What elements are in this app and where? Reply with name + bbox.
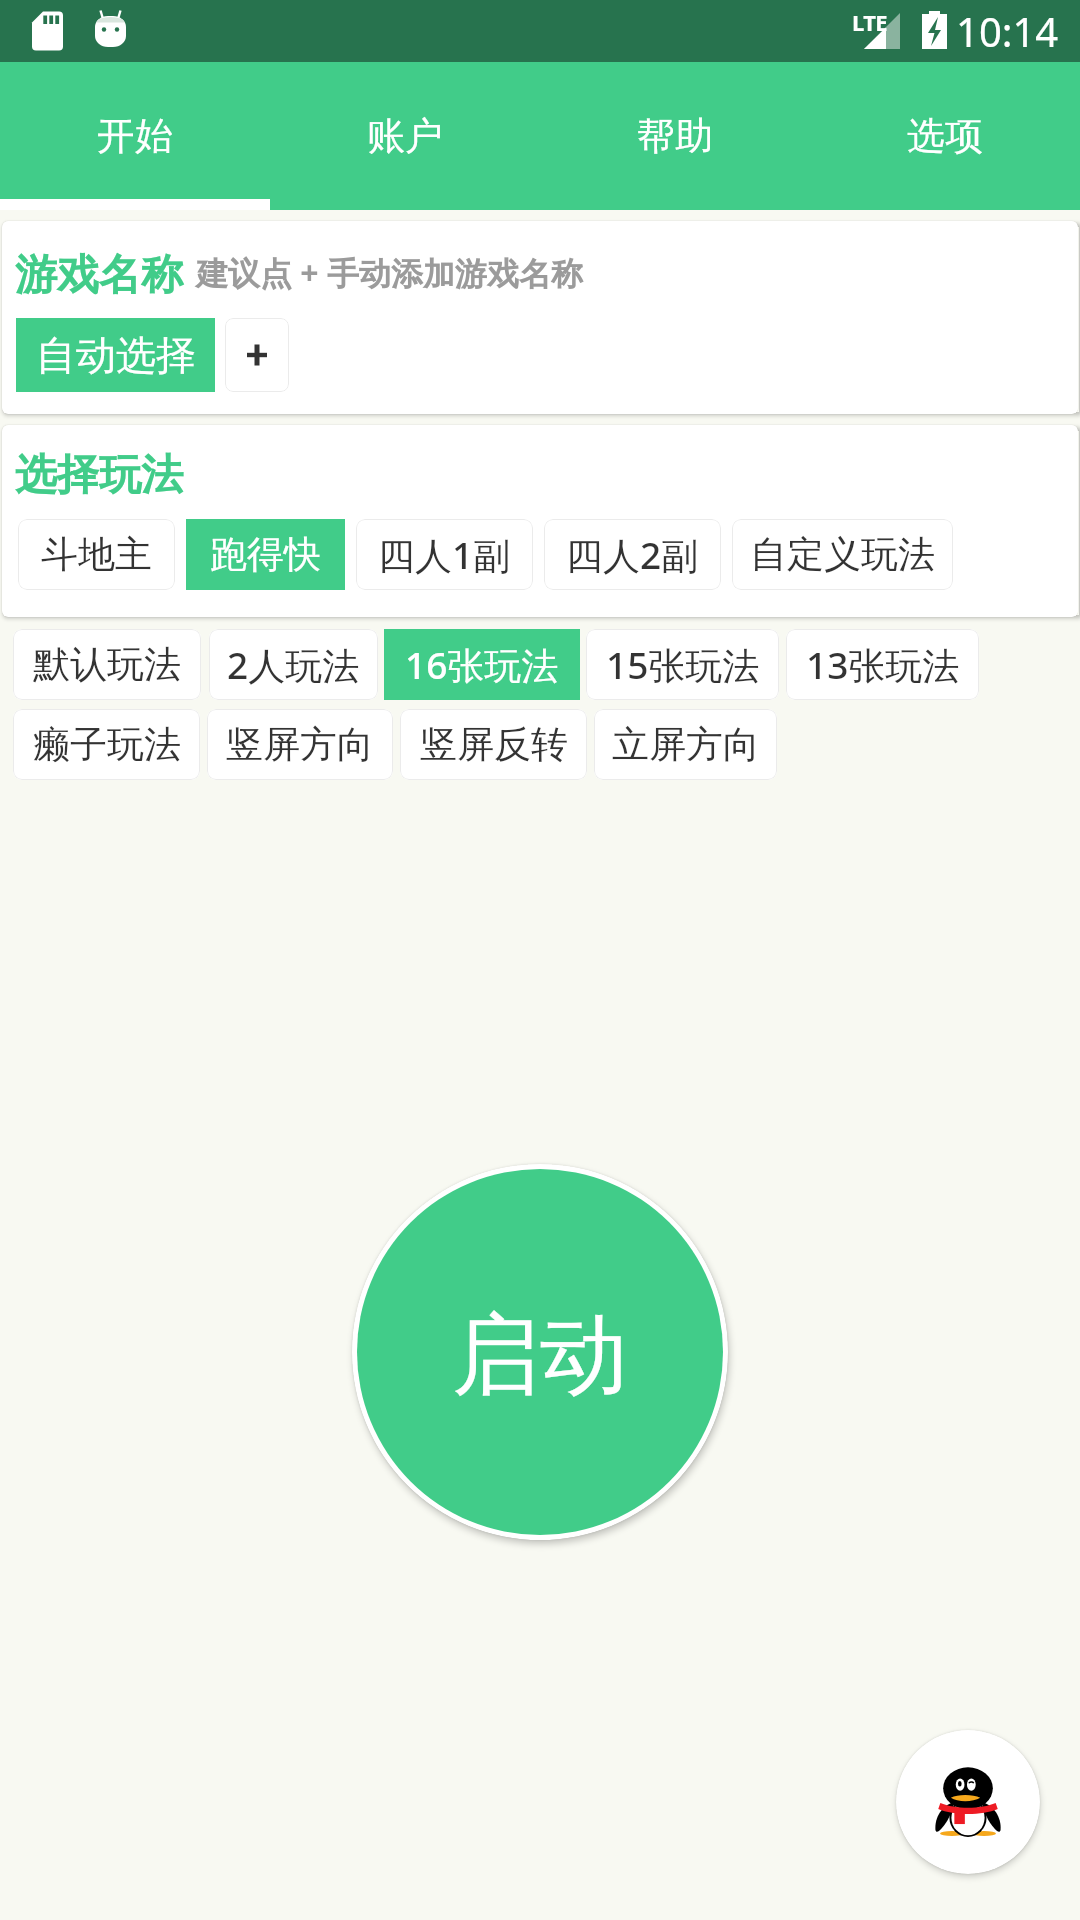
button[interactable]: 选项 xyxy=(810,62,1080,210)
button[interactable]: 自定义玩法 xyxy=(732,519,953,590)
staticText: 竖屏方向 xyxy=(226,721,374,768)
staticText: 四人2副 xyxy=(566,529,699,580)
button[interactable]: 竖屏方向 xyxy=(207,709,393,780)
staticText: 15张玩法 xyxy=(606,639,760,690)
staticText: 选择玩法 xyxy=(15,449,183,502)
button[interactable]: Add xyxy=(225,318,289,392)
staticText: 自动选择 xyxy=(36,330,196,380)
button[interactable]: 默认玩法 xyxy=(13,629,201,700)
button[interactable]: 斗地主 xyxy=(18,519,175,590)
button[interactable]: 2人玩法 xyxy=(209,629,378,700)
staticText: 自定义玩法 xyxy=(750,531,935,578)
staticText: LTE xyxy=(852,7,888,37)
staticText: 帮助 xyxy=(637,112,713,160)
staticText: 账户 xyxy=(367,112,443,160)
staticText: 竖屏反转 xyxy=(420,721,568,768)
button[interactable]: 开始 xyxy=(0,62,270,210)
staticText: 16张玩法 xyxy=(405,639,559,690)
button[interactable]: 账户 xyxy=(270,62,540,210)
button[interactable]: 13张玩法 xyxy=(786,629,979,700)
staticText: 13张玩法 xyxy=(806,639,960,690)
staticText: 10:14 xyxy=(956,4,1059,58)
button[interactable]: 跑得快 xyxy=(186,519,345,590)
staticText: 跑得快 xyxy=(210,531,321,578)
staticText: 立屏方向 xyxy=(612,721,760,768)
staticText: 斗地主 xyxy=(41,531,152,578)
button[interactable]: 自动选择 xyxy=(16,318,215,392)
button[interactable]: 四人2副 xyxy=(544,519,721,590)
button[interactable]: 16张玩法 xyxy=(384,629,580,700)
staticText: 2人玩法 xyxy=(227,639,360,690)
button[interactable]: 竖屏反转 xyxy=(400,709,587,780)
button[interactable]: 立屏方向 xyxy=(594,709,777,780)
staticText: 癞子玩法 xyxy=(33,721,181,768)
button[interactable]: 帮助 xyxy=(540,62,810,210)
staticText: 开始 xyxy=(97,112,173,160)
button[interactable]: QQ xyxy=(896,1730,1040,1874)
staticText: 四人1副 xyxy=(378,529,511,580)
button[interactable]: 四人1副 xyxy=(356,519,533,590)
button[interactable]: 癞子玩法 xyxy=(13,709,200,780)
button[interactable]: 15张玩法 xyxy=(586,629,779,700)
staticText: 选项 xyxy=(907,112,983,160)
staticText: 建议点 + 手动添加游戏名称 xyxy=(196,251,583,295)
staticText: 默认玩法 xyxy=(33,641,181,688)
button[interactable]: 启动 xyxy=(357,1169,723,1535)
staticText: 游戏名称 xyxy=(15,249,183,302)
staticText: 启动 xyxy=(452,1300,628,1411)
